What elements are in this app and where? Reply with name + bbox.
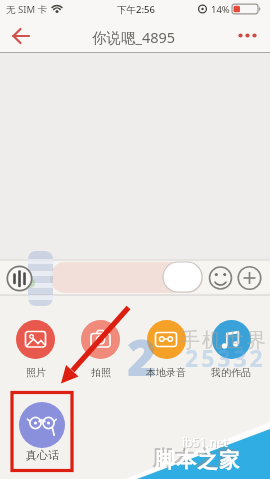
button[interactable] [50, 262, 203, 293]
staticText: 你说嗯_4895 [92, 27, 176, 47]
button[interactable] [16, 320, 55, 359]
staticText: 本地录音 [146, 366, 186, 379]
button[interactable] [81, 320, 120, 359]
staticText: jb51.net [183, 435, 229, 451]
staticText: 14% [211, 3, 230, 16]
staticText: 脚本之家 [152, 446, 238, 471]
staticText: 25332 [185, 342, 266, 373]
staticText: 无 SIM 卡 [6, 3, 47, 16]
staticText: 照片 [26, 366, 46, 379]
button[interactable] [19, 402, 65, 448]
staticText: 手机世界 [179, 328, 267, 353]
staticText: jb51.net [182, 434, 228, 450]
button[interactable] [212, 320, 251, 359]
staticText: 拍照 [91, 366, 111, 379]
button[interactable] [147, 320, 186, 359]
staticText: 2 [127, 323, 157, 391]
staticText: 脚本之家 [154, 448, 240, 473]
staticText: 下午2:56 [117, 3, 155, 16]
staticText: 真心话 [26, 448, 59, 462]
staticText: 我的作品 [211, 366, 251, 379]
